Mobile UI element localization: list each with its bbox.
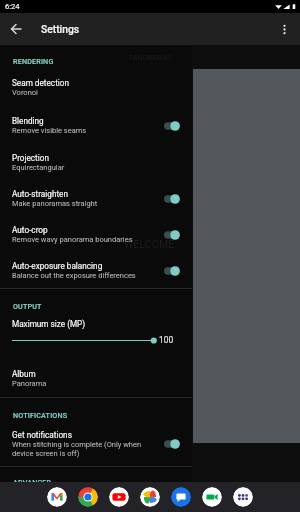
button[interactable]: Toggle (164, 264, 180, 278)
button[interactable]: Get notifications (0, 430, 192, 458)
button[interactable]: Auto-crop (0, 225, 192, 244)
staticText: Make panoramas straight (12, 199, 98, 208)
staticText: Seam detection (12, 78, 69, 88)
button[interactable]: Seam detection (0, 78, 192, 97)
button[interactable]: Projection (0, 153, 192, 172)
button[interactable]: Meet (202, 487, 222, 507)
staticText: Remove wavy panorama boundaries (12, 235, 133, 244)
button[interactable]: Toggle (164, 119, 180, 133)
button[interactable]: Toggle (164, 192, 180, 206)
button[interactable]: YouTube (109, 487, 129, 507)
button[interactable]: Gmail (47, 487, 67, 507)
button[interactable]: Messages (171, 487, 191, 507)
button[interactable]: Auto-exposure balancing (0, 261, 192, 280)
staticText: Auto-exposure balancing (12, 261, 103, 271)
staticText: WELCOME (124, 238, 175, 250)
button[interactable]: Blending (0, 116, 192, 135)
staticText: NOTIFICATIONS (13, 411, 68, 419)
staticText: device screen is off) (12, 449, 80, 458)
button[interactable]: Auto-straighten (0, 189, 192, 208)
staticText: 100 (159, 335, 174, 345)
staticText: Projection (12, 153, 49, 163)
staticText: OUTPUT (13, 302, 42, 310)
staticText: Get notifications (12, 430, 72, 440)
button[interactable]: Back (0, 13, 32, 45)
staticText: Equirectangular (12, 163, 65, 172)
button[interactable]: Toggle (164, 228, 180, 242)
staticText: PANORAMAS (129, 54, 173, 62)
staticText: Balance out the exposure differences (12, 271, 136, 280)
staticText: RENDERING (13, 57, 54, 65)
button[interactable]: Toggle (164, 437, 180, 451)
staticText: Remove visible seams (12, 126, 87, 135)
staticText: Auto-crop (12, 225, 48, 235)
button[interactable]: More options (268, 13, 300, 45)
staticText: Blending (12, 116, 44, 126)
staticText: Panorama (12, 379, 47, 388)
button[interactable]: Maximum size (MP) (0, 319, 192, 345)
button[interactable]: Chrome (78, 487, 98, 507)
staticText: Auto-straighten (12, 189, 68, 199)
button[interactable]: Album (0, 369, 192, 388)
staticText: 6:24 (5, 2, 20, 11)
button[interactable]: All apps (233, 487, 253, 507)
staticText: Settings (41, 23, 80, 35)
staticText: Voronoi (12, 88, 38, 97)
staticText: ADVANCED (13, 478, 52, 486)
staticText: Maximum size (MP) (12, 319, 86, 329)
staticText: When stitching is complete (Only when (12, 440, 142, 449)
staticText: Album (12, 369, 36, 379)
button[interactable]: Photos (140, 487, 160, 507)
